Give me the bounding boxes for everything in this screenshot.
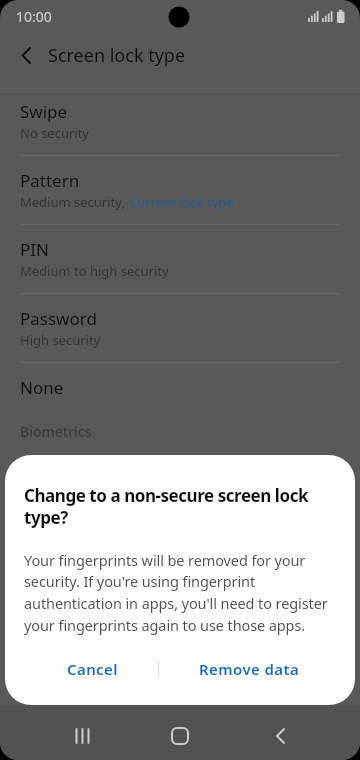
staticText: 10:00 <box>16 7 52 26</box>
staticText: High security <box>20 331 101 349</box>
staticText: Change to a non-secure screen lock type? <box>24 484 309 529</box>
staticText: Password <box>20 307 97 330</box>
button[interactable] <box>0 297 360 359</box>
staticText: Cancel <box>67 659 118 679</box>
button[interactable]: Cancel <box>26 653 158 685</box>
button[interactable] <box>0 90 360 152</box>
staticText: Medium to high security <box>20 262 169 280</box>
staticText: Swipe <box>20 100 68 123</box>
staticText: Screen lock type <box>48 43 186 68</box>
button[interactable]: None <box>0 366 360 418</box>
staticText: None <box>20 376 64 399</box>
staticText: Remove data <box>199 659 300 679</box>
staticText: PIN <box>20 238 49 261</box>
staticText: Current lock type <box>129 193 234 211</box>
staticText: No security <box>20 124 90 142</box>
button[interactable] <box>240 705 360 760</box>
staticText: Biometrics <box>20 422 92 441</box>
staticText: Medium security, <box>20 193 129 211</box>
button[interactable] <box>0 705 120 760</box>
button[interactable] <box>0 30 360 82</box>
button[interactable] <box>0 159 360 221</box>
button[interactable] <box>0 228 360 290</box>
button[interactable] <box>120 705 240 760</box>
button[interactable]: Remove data <box>159 653 339 685</box>
staticText: Your fingerprints will be removed for yo… <box>24 550 328 636</box>
staticText: Pattern <box>20 169 80 192</box>
